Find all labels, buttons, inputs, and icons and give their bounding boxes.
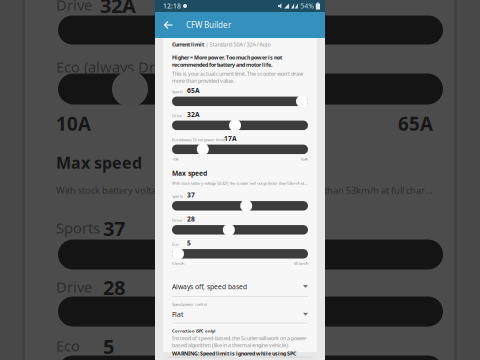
staticText: 32A [100,0,136,19]
staticText: 65A [187,86,200,95]
button[interactable]: Speed-power control [172,302,308,323]
staticText: 12:18 [163,2,181,10]
staticText: Instead of speed-based, the Scutler will… [172,335,308,349]
staticText: 5 [187,239,191,247]
staticText: 10A [172,156,179,162]
staticText: WARNING: Speed limit is ignored while us… [172,350,296,357]
staticText: 28 [187,215,195,223]
staticText: 37 [187,191,195,199]
staticText: 5 km/h [172,261,184,266]
staticText: | Standard: 50A / 32A / Auto [206,41,271,48]
staticText: Eco (always Drive power limit) [172,137,225,142]
staticText: Sports [172,193,183,199]
staticText: 32A [187,110,200,119]
staticText: Higher = More power. Too much power is n… [172,54,282,68]
staticText: 28 [103,274,125,301]
staticText: With stock battery voltage 54.42V, the s… [172,180,308,186]
staticText: With stock battery voltage 54.42V, the s… [56,184,432,196]
staticText: Eco [56,336,80,355]
staticText: 65A [301,156,308,162]
staticText: Speed-power control [172,302,207,307]
staticText: This is your actual current limit. The s… [172,70,303,84]
staticText: Drive [172,113,182,118]
staticText: Max speed [172,169,207,177]
staticText: 65 km/h [294,261,308,266]
staticText: Correction (SPC only) [172,328,215,334]
staticText: Sports [172,89,183,94]
staticText: CFW Builder [186,20,231,30]
staticText: Eco [172,241,178,247]
staticText: 37 [103,215,125,242]
staticText: 54% [300,2,314,10]
button[interactable]: Back [159,12,178,38]
staticText: 10A [56,111,91,136]
staticText: Drive [56,0,92,14]
staticText: 17A [224,134,237,143]
staticText: Drive [56,277,92,296]
staticText: Max speed [56,152,142,173]
staticText: 65A [398,111,433,136]
staticText: 5 [103,333,114,360]
button[interactable]: Always off, speed based [172,282,308,297]
staticText: Eco (always Drive power limit) [56,57,261,76]
staticText: Always off, speed based [172,282,247,291]
staticText: Flat [172,310,183,319]
staticText: Drive [172,217,182,223]
staticText: Current limit [172,41,204,48]
staticText: Sports [56,218,100,237]
